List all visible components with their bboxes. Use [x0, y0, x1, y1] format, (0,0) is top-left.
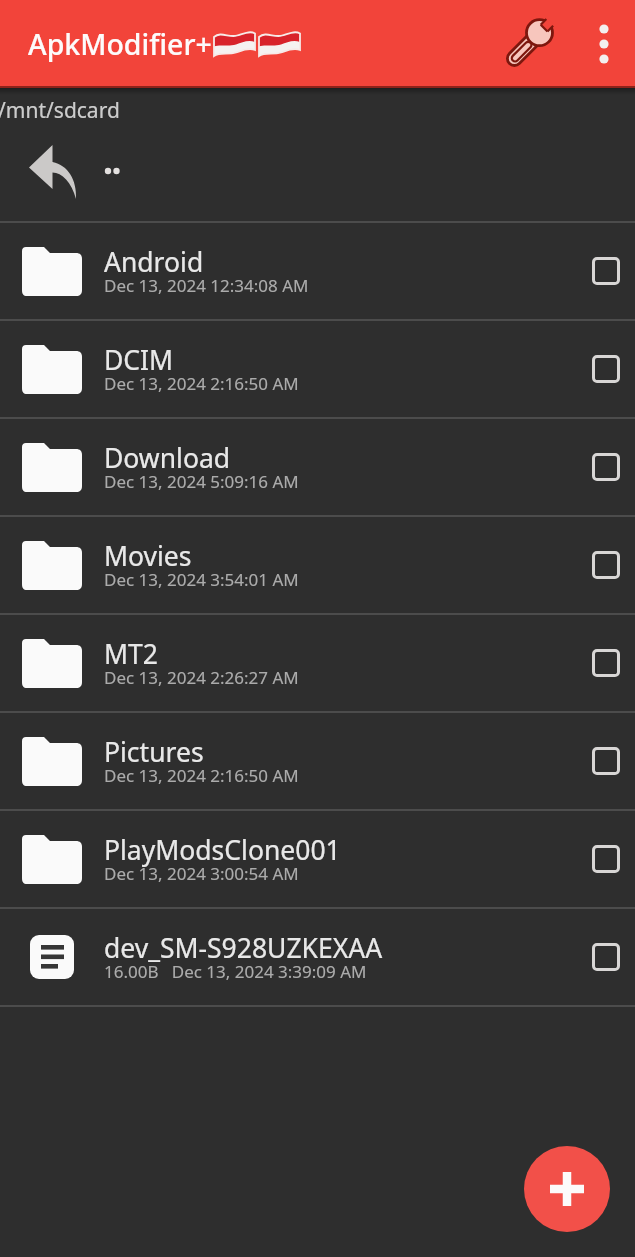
staticText: Android	[104, 244, 204, 280]
button[interactable]	[524, 1146, 610, 1232]
button[interactable]: Pictures	[0, 713, 635, 809]
button[interactable]: MT2	[0, 615, 635, 711]
button[interactable]	[501, 14, 561, 74]
staticText: Movies	[104, 538, 192, 574]
staticText: ApkModifier+	[28, 25, 212, 64]
staticText: DCIM	[104, 342, 174, 378]
staticText: Dec 13, 2024 2:16:50 AM	[104, 372, 299, 395]
button[interactable]	[592, 355, 620, 383]
button[interactable]	[592, 257, 620, 285]
button[interactable]: DCIM	[0, 321, 635, 417]
button[interactable]	[589, 16, 619, 72]
button[interactable]	[0, 122, 635, 221]
button[interactable]	[592, 551, 620, 579]
button[interactable]: Android	[0, 223, 635, 319]
button[interactable]: PlayModsClone001	[0, 811, 635, 907]
button[interactable]	[592, 747, 620, 775]
staticText: Download	[104, 440, 231, 476]
staticText: Dec 13, 2024 5:09:16 AM	[104, 470, 299, 493]
button[interactable]	[592, 649, 620, 677]
staticText: dev_SM-S928UZKEXAA	[104, 930, 383, 966]
button[interactable]	[592, 453, 620, 481]
staticText: /mnt/sdcard	[0, 96, 120, 123]
staticText: Dec 13, 2024 2:26:27 AM	[104, 666, 299, 689]
staticText: MT2	[104, 636, 158, 672]
button[interactable]: Download	[0, 419, 635, 515]
staticText: PlayModsClone001	[104, 832, 341, 868]
staticText: Dec 13, 2024 2:16:50 AM	[104, 764, 299, 787]
staticText: 16.00B Dec 13, 2024 3:39:09 AM	[104, 960, 367, 983]
staticText: Dec 13, 2024 12:34:08 AM	[104, 274, 309, 297]
button[interactable]: dev_SM-S928UZKEXAA	[0, 909, 635, 1005]
button[interactable]	[592, 845, 620, 873]
staticText: Pictures	[104, 734, 204, 770]
button[interactable]	[592, 943, 620, 971]
staticText: Dec 13, 2024 3:00:54 AM	[104, 862, 299, 885]
staticText: Dec 13, 2024 3:54:01 AM	[104, 568, 299, 591]
button[interactable]: Movies	[0, 517, 635, 613]
